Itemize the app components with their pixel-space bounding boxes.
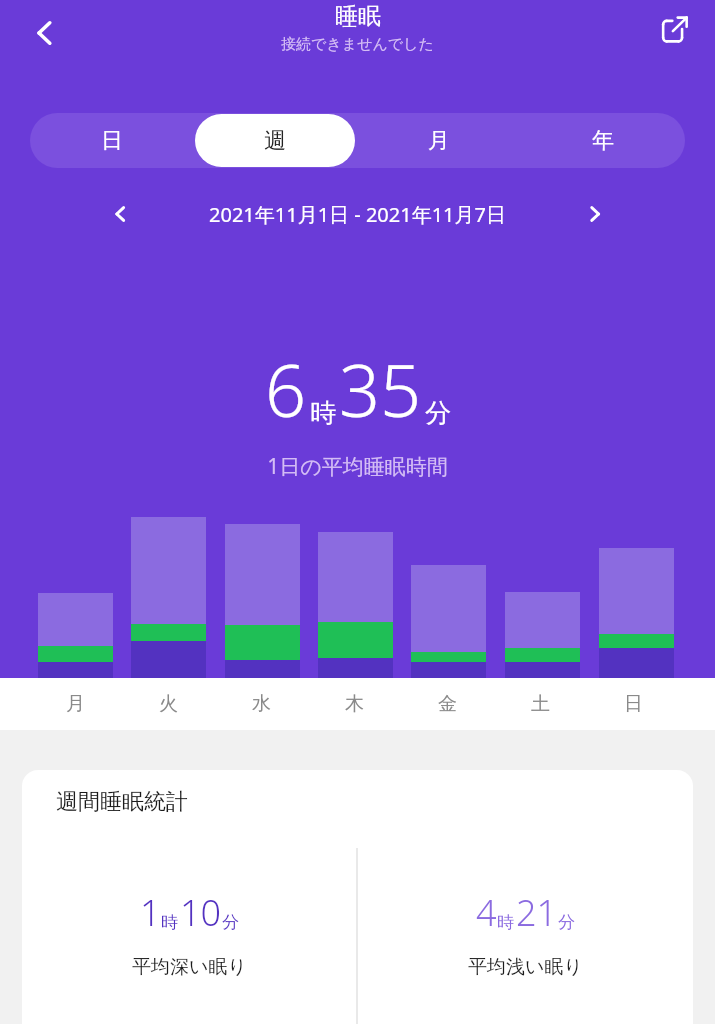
staticText: 月: [66, 692, 85, 716]
staticText: 2021年11月1日 - 2021年11月7日: [209, 201, 506, 228]
button[interactable]: 週間睡眠統計: [22, 770, 693, 1024]
staticText: 1日の平均睡眠時間: [267, 452, 448, 481]
button[interactable]: 年: [521, 113, 685, 168]
staticText: 週: [264, 127, 286, 155]
staticText: 分: [558, 912, 575, 933]
staticText: 年: [592, 127, 614, 155]
button[interactable]: 週: [195, 114, 355, 167]
staticText: 平均浅い眠り: [468, 955, 583, 979]
button[interactable]: 月: [357, 113, 521, 168]
button[interactable]: 日: [30, 113, 193, 168]
staticText: 週間睡眠統計: [56, 788, 188, 816]
staticText: 金: [438, 692, 457, 716]
staticText: 土: [531, 692, 550, 716]
staticText: 分: [222, 912, 239, 933]
button[interactable]: Previous week: [96, 190, 144, 238]
staticText: 6: [265, 340, 307, 438]
button[interactable]: Share: [647, 2, 701, 56]
staticText: 時: [497, 912, 514, 933]
staticText: 火: [159, 692, 178, 716]
staticText: 平均深い眠り: [132, 955, 247, 979]
button[interactable]: Next week: [571, 190, 619, 238]
button[interactable]: Back: [14, 2, 76, 64]
staticText: 日: [101, 127, 123, 155]
staticText: 時: [310, 397, 336, 430]
staticText: 21: [516, 888, 558, 937]
staticText: 時: [161, 912, 178, 933]
staticText: 4: [476, 888, 497, 937]
staticText: 木: [345, 692, 364, 716]
staticText: 35: [339, 340, 422, 438]
staticText: 日: [624, 692, 643, 716]
staticText: 接続できませんでした: [281, 35, 434, 54]
staticText: 睡眠: [335, 2, 381, 31]
staticText: 分: [425, 397, 451, 430]
staticText: 月: [428, 127, 450, 155]
staticText: 1: [140, 888, 161, 937]
staticText: 水: [252, 692, 271, 716]
staticText: 10: [180, 888, 222, 937]
